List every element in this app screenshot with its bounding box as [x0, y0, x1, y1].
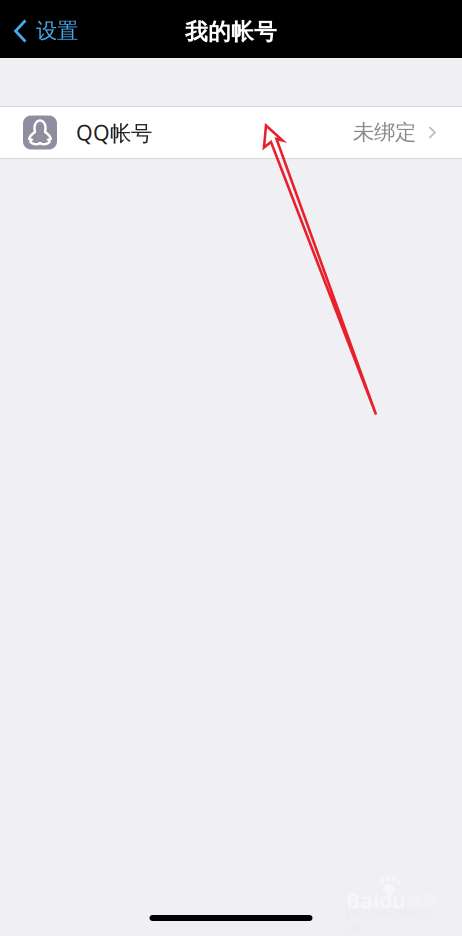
staticText: QQ帐号	[76, 118, 152, 147]
staticText: Baidu	[346, 886, 406, 914]
staticText: 我的帐号	[185, 18, 277, 46]
staticText: 未绑定	[353, 119, 416, 146]
staticText: 设置	[36, 18, 78, 44]
button[interactable]: 返回设置	[0, 10, 78, 52]
button[interactable]: QQ帐号 未绑定	[0, 107, 462, 158]
